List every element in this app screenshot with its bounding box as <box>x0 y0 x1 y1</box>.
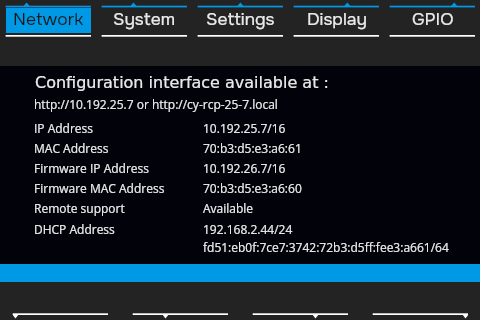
staticText: Remote support <box>34 200 125 216</box>
button[interactable]: Soft key 4 <box>360 282 480 320</box>
staticText: Firmware IP Address <box>34 160 150 176</box>
staticText: Firmware MAC Address <box>34 180 165 196</box>
staticText: 10.192.26.7/16 <box>203 160 286 176</box>
staticText: Configuration interface available at : <box>35 73 329 92</box>
staticText: Display <box>307 8 367 30</box>
staticText: http://10.192.25.7 or http://cy-rcp-25-7… <box>34 96 278 112</box>
staticText: Network <box>13 8 84 30</box>
staticText: IP Address <box>34 120 94 136</box>
staticText: GPIO <box>412 8 454 30</box>
staticText: 70:b3:d5:e3:a6:60 <box>203 180 302 196</box>
staticText: Available <box>203 200 254 216</box>
button[interactable]: Network <box>0 0 96 66</box>
button[interactable]: GPIO <box>384 0 480 66</box>
staticText: MAC Address <box>34 140 109 156</box>
staticText: System <box>113 8 176 30</box>
button[interactable]: Display <box>288 0 384 66</box>
button[interactable]: Settings <box>192 0 288 66</box>
staticText: fd51:eb0f:7ce7:3742:72b3:d5ff:fee3:a661/… <box>203 239 449 255</box>
button[interactable]: Soft key 2 <box>120 282 240 320</box>
staticText: DHCP Address <box>34 221 115 237</box>
staticText: 10.192.25.7/16 <box>203 120 286 136</box>
button[interactable]: Soft key 3 <box>240 282 360 320</box>
staticText: Settings <box>206 8 275 30</box>
button[interactable]: System <box>96 0 192 66</box>
staticText: 70:b3:d5:e3:a6:61 <box>203 140 302 156</box>
button[interactable]: Soft key 1 <box>0 282 120 320</box>
staticText: 192.168.2.44/24 <box>203 221 293 237</box>
